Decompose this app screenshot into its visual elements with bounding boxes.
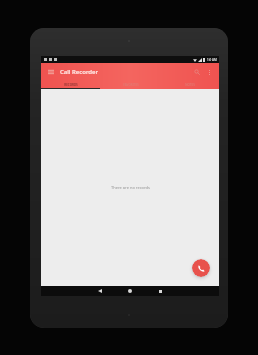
button[interactable]: More options [203,66,215,78]
staticText: Call Recorder [60,68,99,76]
button[interactable]: RECORDS [41,81,101,89]
button[interactable]: FAVORITES [101,81,160,89]
button[interactable]: Open navigation drawer [45,66,57,78]
button[interactable]: Back [93,286,107,296]
staticText: RECORDS [64,83,78,87]
button[interactable]: Record call [192,259,210,277]
button[interactable]: Home [123,286,137,296]
staticText: FAVORITES [123,83,139,87]
button[interactable]: NOTES [160,81,219,89]
staticText: There are no records [111,185,150,190]
button[interactable]: Search [191,66,203,78]
staticText: NOTES [185,83,195,87]
button[interactable]: Recent apps [153,286,167,296]
staticText: 1:0 AM [207,58,217,62]
